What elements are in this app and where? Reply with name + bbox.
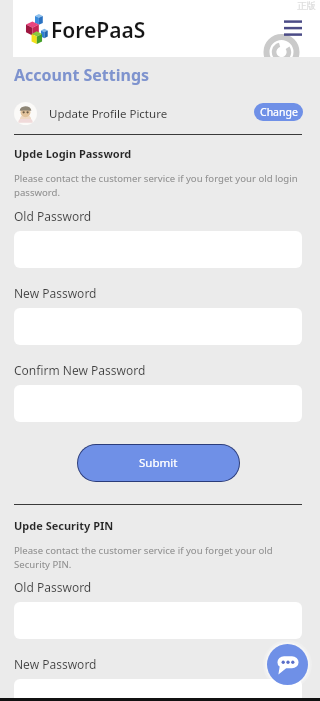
staticText: Please contact the customer service if y… [14,172,302,199]
staticText: New Password [14,656,97,672]
staticText: Old Password [14,579,92,595]
staticText: Please contact the customer service if y… [14,544,302,571]
staticText: Change [260,105,298,119]
button[interactable]: Chat [267,644,308,685]
button[interactable]: Change [254,103,303,121]
staticText: Confirm New Password [14,362,146,378]
staticText: Upde Security PIN [14,518,114,533]
staticText: Update Profile Picture [49,106,168,122]
staticText: Submit [139,455,178,471]
button[interactable] [14,679,302,701]
staticText: 正版 [297,0,316,12]
staticText: Upde Login Password [14,146,132,161]
staticText: Account Settings [14,64,150,86]
button[interactable]: Menu [280,15,306,41]
button[interactable]: Update Profile Picture [10,98,210,128]
button[interactable]: Submit [78,445,239,481]
staticText: Old Password [14,208,92,224]
staticText: New Password [14,285,97,301]
staticText: ForePaaS [51,16,146,45]
